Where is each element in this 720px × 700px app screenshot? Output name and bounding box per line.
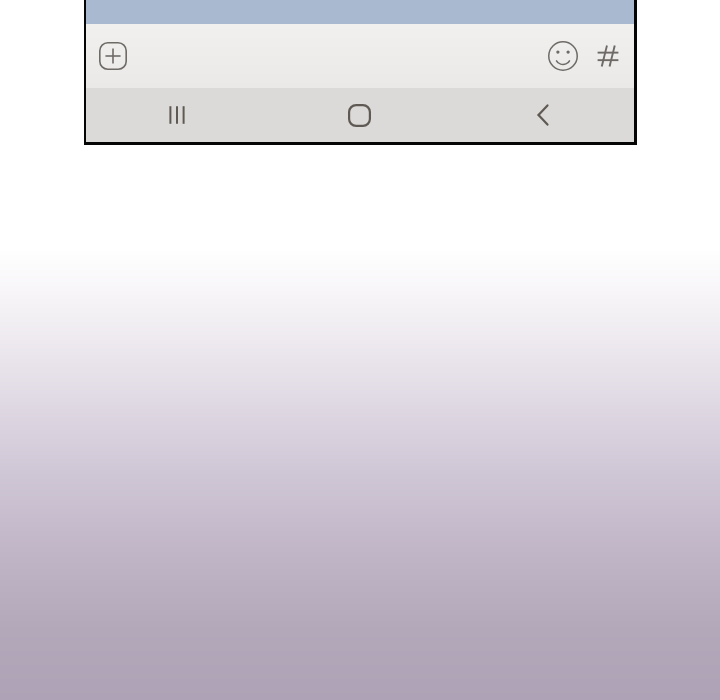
- button[interactable]: Recent apps: [86, 88, 268, 142]
- button[interactable]: Add attachment: [95, 38, 131, 74]
- button[interactable]: Emoji: [544, 37, 582, 75]
- button[interactable]: Home: [268, 88, 451, 142]
- button[interactable]: Back: [451, 88, 634, 142]
- button[interactable]: Hashtag: [589, 37, 627, 75]
